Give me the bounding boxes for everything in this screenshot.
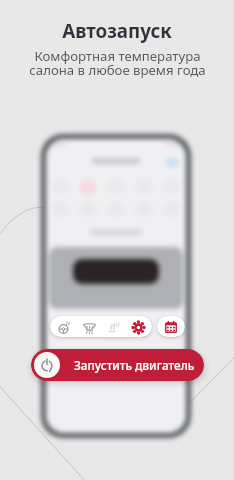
button[interactable]: Settings (129, 318, 147, 336)
staticText: Запустить двигатель (74, 357, 195, 373)
button[interactable]: Heated steering wheel (55, 318, 73, 336)
button[interactable]: Schedule (157, 316, 185, 337)
button[interactable]: Seat heater (104, 318, 122, 336)
staticText: Комфортная температура салона в любое вр… (29, 47, 206, 79)
button[interactable]: Windshield defrost (80, 318, 98, 336)
button[interactable]: Запустить двигатель (31, 349, 204, 381)
staticText: Автозапуск (62, 18, 172, 44)
